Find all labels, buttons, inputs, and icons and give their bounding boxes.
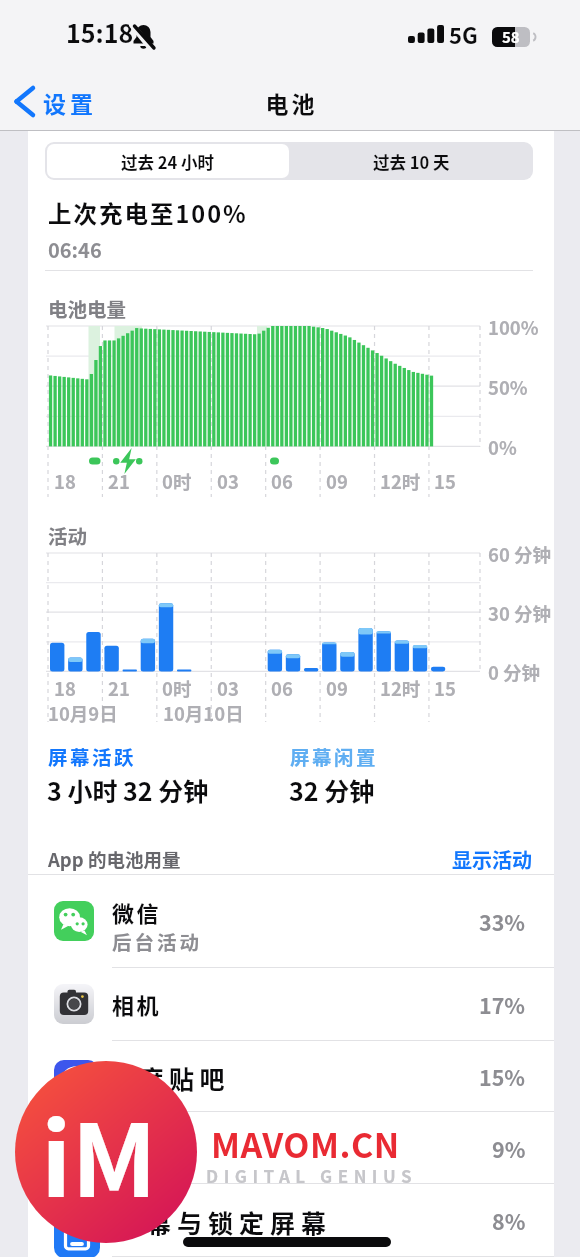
- staticText: 微信: [112, 896, 162, 928]
- staticText: 活动: [48, 521, 88, 549]
- staticText: 12时: [380, 468, 421, 495]
- staticText: 3 小时 32 分钟: [47, 772, 209, 808]
- staticText: 设置: [41, 86, 95, 119]
- staticText: iM: [41, 1081, 157, 1226]
- staticText: 06: [271, 468, 293, 495]
- staticText: 03: [217, 675, 239, 702]
- staticText: 06: [271, 675, 293, 702]
- staticText: 15%: [479, 1061, 526, 1092]
- staticText: 0时: [162, 468, 192, 495]
- staticText: 06:46: [48, 235, 102, 264]
- staticText: 9%: [492, 1133, 526, 1164]
- button[interactable]: [289, 144, 533, 178]
- button[interactable]: 微信: [28, 874, 554, 968]
- staticText: 上次充电至100%: [48, 196, 248, 230]
- button[interactable]: [47, 144, 289, 178]
- staticText: 10月10日: [163, 700, 244, 727]
- staticText: MAVOM.CN: [211, 1119, 400, 1168]
- staticText: 15: [434, 468, 456, 495]
- staticText: 32 分钟: [289, 772, 375, 808]
- button[interactable]: 9%: [28, 1112, 554, 1184]
- staticText: 百度贴吧: [108, 1060, 231, 1096]
- button[interactable]: 相机: [28, 968, 554, 1041]
- staticText: 8%: [492, 1205, 526, 1236]
- staticText: 过去 24 小时: [121, 150, 214, 174]
- staticText: 60 分钟: [488, 541, 552, 568]
- button[interactable]: [420, 842, 540, 872]
- staticText: App 的电池用量: [48, 846, 181, 873]
- staticText: 30 分钟: [488, 600, 552, 627]
- staticText: 100%: [488, 314, 539, 341]
- staticText: 03: [217, 468, 239, 495]
- staticText: 0时: [162, 675, 192, 702]
- staticText: 相机: [112, 988, 162, 1020]
- staticText: 15:18: [66, 14, 134, 50]
- staticText: 33%: [479, 906, 526, 937]
- staticText: 电池电量: [48, 294, 127, 322]
- staticText: 后台活动: [112, 927, 203, 955]
- staticText: 18: [54, 675, 76, 702]
- staticText: DIGITAL GENIUS: [206, 1163, 418, 1188]
- staticText: 21: [108, 468, 130, 495]
- staticText: 15: [434, 675, 456, 702]
- button[interactable]: 百度贴吧: [28, 1041, 554, 1112]
- staticText: 09: [326, 468, 348, 495]
- staticText: 屏幕活跃: [48, 742, 137, 770]
- staticText: 0%: [488, 434, 517, 461]
- staticText: 10月9日: [48, 700, 118, 727]
- staticText: 50%: [488, 374, 528, 401]
- staticText: 屏幕闲置: [290, 742, 379, 770]
- staticText: 17%: [479, 989, 526, 1020]
- staticText: 21: [108, 675, 130, 702]
- staticText: 09: [326, 675, 348, 702]
- staticText: 12时: [380, 675, 421, 702]
- button[interactable]: [10, 80, 120, 126]
- button[interactable]: 屏幕与锁定屏幕: [28, 1184, 554, 1257]
- staticText: 过去 10 天: [373, 150, 450, 174]
- staticText: 显示活动: [452, 845, 532, 874]
- staticText: 18: [54, 468, 76, 495]
- staticText: 58: [502, 26, 520, 48]
- staticText: 电池: [264, 86, 316, 119]
- staticText: 5G: [449, 18, 478, 50]
- staticText: 0 分钟: [488, 659, 541, 686]
- staticText: 屏幕与锁定屏幕: [115, 1204, 333, 1240]
